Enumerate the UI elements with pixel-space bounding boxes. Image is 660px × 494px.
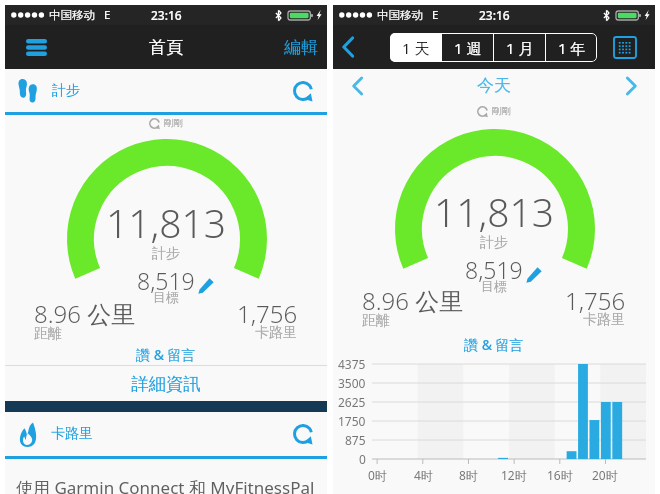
staticText: 2625 (338, 394, 366, 410)
staticText: 11,813 (434, 185, 555, 238)
staticText: 3500 (338, 375, 366, 391)
button[interactable]: 詳細資訊 (5, 366, 327, 401)
staticText: 計步 (52, 82, 80, 100)
button[interactable]: 1 月 (494, 33, 545, 62)
staticText: 4375 (338, 356, 366, 372)
staticText: 1 天 (402, 38, 430, 58)
staticText: 8,519 (465, 254, 523, 285)
staticText: 1 年 (558, 38, 586, 58)
staticText: 今天 (477, 75, 511, 96)
button[interactable]: Edit goal (198, 278, 214, 294)
staticText: 0时 (368, 467, 387, 483)
staticText: 首頁 (149, 37, 183, 58)
staticText: 目標 (153, 289, 179, 305)
staticText: 中国移动 (377, 8, 423, 22)
staticText: 16时 (547, 467, 573, 483)
button[interactable]: 1 天 (390, 33, 441, 62)
staticText: 23:16 (479, 7, 510, 23)
staticText: 0 (359, 451, 366, 467)
button[interactable]: 讚 & 留言 (333, 333, 655, 355)
staticText: 編輯 (284, 37, 318, 58)
staticText: 目標 (481, 278, 507, 294)
staticText: 計步 (152, 245, 180, 263)
button[interactable]: 1 年 (546, 33, 597, 62)
staticText: 875 (345, 432, 366, 448)
button[interactable]: Refresh calories (293, 424, 313, 444)
staticText: 讚 & 留言 (464, 335, 524, 354)
button[interactable]: Calendar (614, 36, 636, 58)
staticText: 8.96 公里 (34, 297, 136, 330)
staticText: 8.96 公里 (362, 284, 464, 317)
staticText: 1 週 (454, 38, 482, 58)
staticText: 4时 (414, 467, 433, 483)
button[interactable]: 計步 (5, 69, 327, 112)
staticText: 1,756 (237, 297, 298, 330)
staticText: 讚 & 留言 (136, 345, 196, 364)
button[interactable]: Refresh steps (293, 81, 313, 101)
button[interactable]: 讚 & 留言 (5, 343, 327, 365)
button[interactable]: Back (341, 36, 355, 58)
staticText: 1 月 (506, 38, 534, 58)
staticText: 計步 (480, 234, 508, 252)
staticText: 詳細資訊 (131, 373, 201, 395)
button[interactable]: Edit goal (526, 267, 542, 283)
staticText: 距離 (362, 312, 390, 330)
staticText: 8,519 (137, 265, 195, 296)
staticText: 1750 (338, 413, 366, 429)
staticText: 12时 (501, 467, 527, 483)
staticText: 卡路里 (255, 324, 297, 342)
button[interactable]: Next day (617, 72, 645, 100)
button[interactable]: 卡路里 (5, 412, 327, 456)
staticText: 剛剛 (492, 105, 511, 117)
staticText: 23:16 (151, 7, 182, 23)
staticText: 20时 (592, 467, 618, 483)
button[interactable]: 今天 (477, 75, 511, 96)
staticText: E (104, 7, 111, 23)
staticText: 中国移动 (49, 8, 95, 22)
staticText: 卡路里 (51, 425, 93, 443)
staticText: 距離 (34, 325, 62, 343)
staticText: 使用 Garmin Connect 和 MyFitnessPal 來 (16, 476, 327, 494)
button[interactable]: 1 週 (442, 33, 493, 62)
staticText: E (432, 7, 439, 23)
button[interactable]: 編輯 (284, 37, 318, 58)
staticText: 1,756 (565, 284, 626, 317)
staticText: 11,813 (106, 196, 227, 249)
button[interactable]: Previous day (343, 72, 371, 100)
staticText: 卡路里 (583, 311, 625, 329)
button[interactable]: Menu (23, 34, 49, 60)
staticText: 8时 (459, 467, 478, 483)
staticText: 剛剛 (164, 117, 183, 129)
